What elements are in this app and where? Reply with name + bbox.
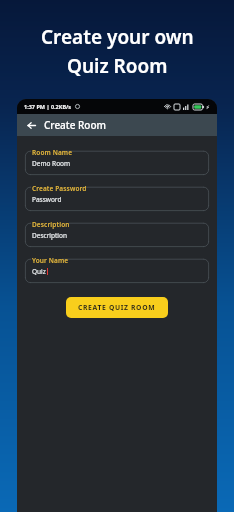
staticText: Description <box>32 231 67 240</box>
staticText: Create your own <box>41 24 194 50</box>
button[interactable]: Description <box>25 219 209 247</box>
staticText: 1:37 PM | 0.2KB/s <box>24 103 72 110</box>
button[interactable]: Create Password <box>25 183 209 211</box>
staticText: Create Password <box>32 184 87 193</box>
staticText: Room Name <box>32 148 73 157</box>
button[interactable]: CREATE QUIZ ROOM <box>66 297 168 318</box>
button[interactable]: Back <box>24 118 38 132</box>
button[interactable]: Your Name <box>25 255 209 283</box>
staticText: ⚡ <box>206 104 210 110</box>
staticText: CREATE QUIZ ROOM <box>78 303 156 312</box>
staticText: Create Room <box>44 118 107 132</box>
button[interactable]: Back <box>17 114 217 136</box>
staticText: Demo Room <box>32 159 71 168</box>
staticText: Your Name <box>32 256 69 265</box>
staticText: Description <box>32 220 70 229</box>
staticText: Password <box>32 195 62 204</box>
button[interactable]: Room Name <box>25 147 209 175</box>
staticText: Quiz <box>32 267 46 276</box>
staticText: Quiz Room <box>67 53 168 79</box>
